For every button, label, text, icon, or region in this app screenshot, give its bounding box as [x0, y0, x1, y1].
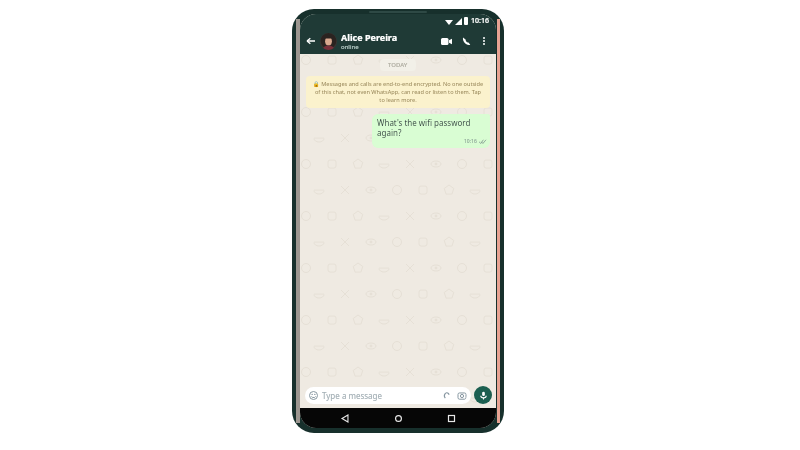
- button[interactable]: 🔒 Messages and calls are end-to-end encr…: [306, 76, 490, 108]
- button[interactable]: Recent apps: [443, 410, 459, 426]
- button[interactable]: Video call: [438, 33, 454, 49]
- staticText: TODAY: [388, 61, 408, 69]
- button[interactable]: Back: [337, 410, 353, 426]
- button[interactable]: Record voice message: [474, 386, 492, 404]
- button[interactable]: Alice Pereira: [341, 31, 438, 51]
- button[interactable]: Back: [304, 34, 318, 48]
- staticText: 10:16: [471, 16, 489, 26]
- button[interactable]: Voice call: [458, 33, 474, 49]
- staticText: What's the wifi password again?: [377, 117, 486, 138]
- button[interactable]: Profile photo: [320, 33, 337, 50]
- button[interactable]: What's the wifi password again?: [372, 114, 490, 148]
- button[interactable]: Home: [390, 410, 406, 426]
- staticText: 10:16: [464, 138, 477, 145]
- staticText: 🔒 Messages and calls are end-to-end encr…: [312, 80, 484, 104]
- button[interactable]: Type a message: [305, 387, 471, 404]
- button[interactable]: More options: [477, 34, 491, 48]
- staticText: online: [341, 43, 359, 51]
- staticText: Type a message: [322, 390, 441, 401]
- staticText: Alice Pereira: [341, 31, 398, 43]
- button[interactable]: Attach: [441, 390, 452, 401]
- button[interactable]: Camera: [456, 390, 467, 401]
